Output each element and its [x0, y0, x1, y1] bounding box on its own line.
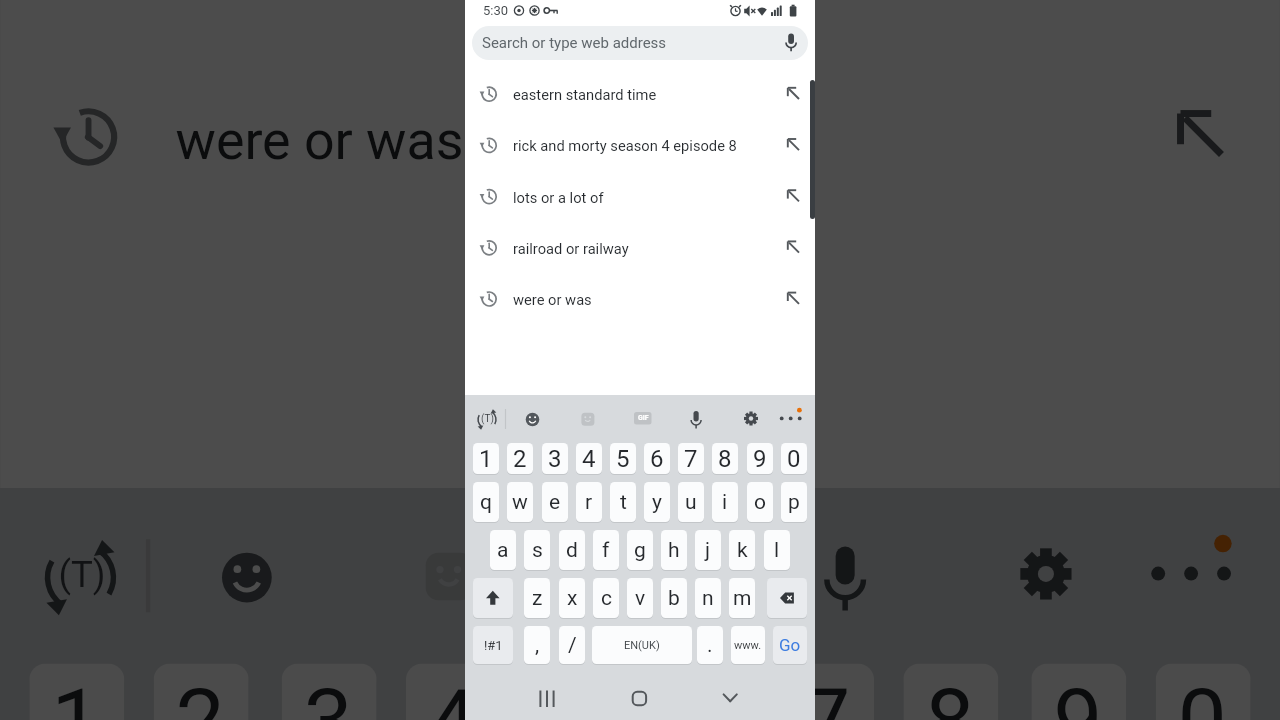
staticText: t	[620, 490, 627, 515]
staticText: 5	[552, 671, 603, 720]
button[interactable]: 3	[542, 443, 568, 474]
button[interactable]	[1148, 535, 1258, 620]
button[interactable]: m	[729, 578, 755, 618]
button[interactable]	[530, 684, 564, 714]
button[interactable]: were or was	[465, 274, 815, 324]
button[interactable]: railroad or railway	[0, 0, 1280, 42]
button[interactable]: Search or type web address	[472, 26, 808, 60]
button[interactable]: f	[593, 530, 619, 570]
staticText: lots or a lot of	[513, 189, 604, 206]
button[interactable]: r	[576, 482, 602, 522]
button[interactable]: 7	[678, 443, 704, 474]
staticText: eastern standard time	[513, 86, 657, 103]
button[interactable]: 6	[644, 443, 670, 474]
button[interactable]: EN(UK)	[592, 626, 692, 664]
staticText: 5	[616, 445, 630, 473]
button[interactable]	[205, 535, 289, 620]
button[interactable]: (T)	[37, 535, 124, 616]
button[interactable]: q	[473, 482, 499, 522]
button[interactable]: g	[627, 530, 653, 570]
button[interactable]	[607, 535, 691, 620]
button[interactable]: 7	[779, 663, 874, 720]
button[interactable]: 0	[781, 443, 807, 474]
button[interactable]	[739, 408, 762, 431]
staticText: 8	[718, 445, 732, 473]
button[interactable]	[684, 408, 707, 431]
staticText: 0	[1178, 671, 1229, 720]
button[interactable]: s	[524, 530, 550, 570]
button[interactable]: a	[490, 530, 516, 570]
button[interactable]: /	[559, 626, 585, 664]
button[interactable]	[473, 578, 513, 618]
staticText: z	[532, 586, 543, 611]
staticText: rick and morty season 4 episode 8	[513, 137, 737, 154]
button[interactable]: b	[661, 578, 687, 618]
button[interactable]: ,	[524, 626, 550, 664]
button[interactable]: 5	[530, 663, 625, 720]
button[interactable]: w	[507, 482, 533, 522]
button[interactable]: were or was	[0, 45, 1280, 228]
button[interactable]	[779, 408, 809, 431]
button[interactable]: 2	[154, 663, 249, 720]
button[interactable]: t	[610, 482, 636, 522]
button[interactable]: www.	[731, 626, 765, 664]
button[interactable]: 1	[29, 663, 124, 720]
staticText: railroad or railway	[513, 240, 629, 257]
staticText: GIF	[633, 557, 673, 587]
button[interactable]: 4	[576, 443, 602, 474]
button[interactable]: p	[781, 482, 807, 522]
button[interactable]: railroad or railway	[465, 223, 815, 273]
button[interactable]: 1	[473, 443, 499, 474]
button[interactable]: k	[729, 530, 755, 570]
button[interactable]: y	[644, 482, 670, 522]
button[interactable]: 2	[507, 443, 533, 474]
button[interactable]	[713, 684, 747, 714]
button[interactable]: 6	[655, 663, 750, 720]
button[interactable]: 8	[903, 663, 998, 720]
staticText: q	[480, 490, 492, 515]
staticText: were or was	[513, 291, 592, 308]
staticText: ,	[535, 633, 540, 658]
staticText: s	[532, 538, 543, 563]
button[interactable]: x	[559, 578, 585, 618]
button[interactable]	[521, 408, 544, 431]
button[interactable]: i	[712, 482, 738, 522]
button[interactable]: Go	[773, 626, 807, 664]
button[interactable]: 4	[406, 663, 501, 720]
button[interactable]	[767, 578, 807, 618]
button[interactable]	[576, 408, 599, 431]
button[interactable]: z	[524, 578, 550, 618]
button[interactable]	[406, 535, 490, 620]
button[interactable]: 5	[610, 443, 636, 474]
button[interactable]	[801, 535, 885, 620]
button[interactable]: 9	[747, 443, 773, 474]
button[interactable]: o	[747, 482, 773, 522]
button[interactable]: 9	[1031, 663, 1126, 720]
button[interactable]: eastern standard time	[465, 69, 815, 119]
staticText: v	[635, 586, 646, 611]
staticText: Go	[779, 635, 801, 655]
button[interactable]	[631, 408, 654, 431]
button[interactable]: e	[542, 482, 568, 522]
staticText: e	[549, 490, 561, 515]
staticText: were or was	[176, 108, 464, 170]
button[interactable]: 0	[1156, 663, 1251, 720]
button[interactable]: u	[678, 482, 704, 522]
button[interactable]: lots or a lot of	[465, 172, 815, 222]
staticText: f	[602, 538, 610, 563]
button[interactable]: (T)	[475, 408, 499, 430]
button[interactable]: .	[697, 626, 723, 664]
button[interactable]: v	[627, 578, 653, 618]
button[interactable]: !#1	[473, 626, 513, 664]
button[interactable]: l	[764, 530, 790, 570]
button[interactable]: 8	[712, 443, 738, 474]
button[interactable]: d	[559, 530, 585, 570]
button[interactable]: j	[695, 530, 721, 570]
button[interactable]	[1002, 535, 1086, 620]
button[interactable]: 3	[282, 663, 377, 720]
button[interactable]: rick and morty season 4 episode 8	[465, 120, 815, 170]
button[interactable]: c	[593, 578, 619, 618]
button[interactable]	[622, 684, 656, 714]
button[interactable]: n	[695, 578, 721, 618]
button[interactable]: h	[661, 530, 687, 570]
